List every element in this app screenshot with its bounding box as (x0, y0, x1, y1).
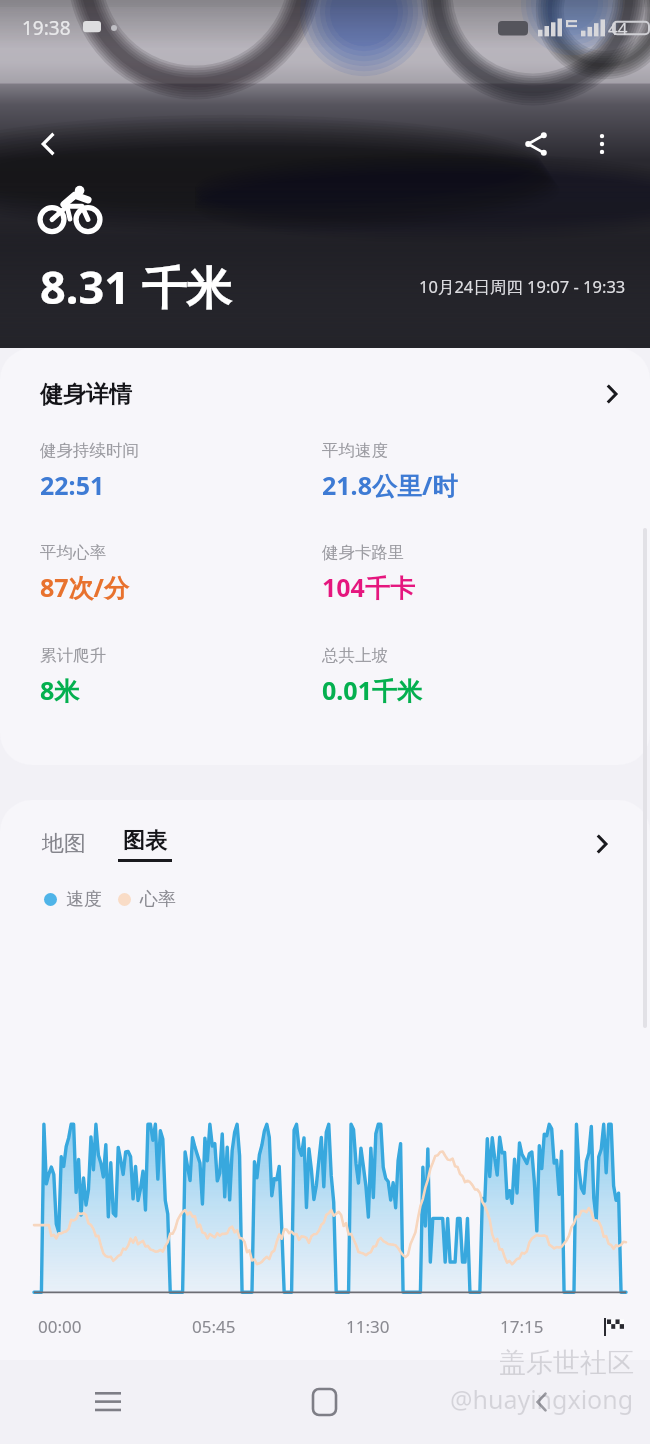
button[interactable]: Home (216, 1360, 433, 1444)
staticText: 累计爬升 (40, 645, 106, 666)
staticText: 心率 (140, 888, 176, 911)
staticText: 05:45 (192, 1315, 236, 1338)
staticText: 健身详情 (40, 380, 132, 409)
staticText: 平均心率 (40, 542, 106, 563)
staticText: 盖乐世社区 (499, 1346, 634, 1380)
staticText: 0.01千米 (322, 673, 422, 707)
staticText: 8米 (40, 673, 80, 707)
staticText: 104千卡 (322, 570, 415, 604)
staticText: 平均速度 (322, 440, 388, 461)
staticText: 19:38 (22, 15, 71, 41)
staticText: 11:30 (346, 1315, 390, 1338)
button[interactable]: 图表 (114, 821, 176, 868)
staticText: 地图 (42, 830, 86, 858)
staticText: 图表 (123, 827, 167, 855)
staticText: 8.31 千米 (40, 256, 232, 317)
staticText: 健身卡路里 (322, 542, 405, 563)
button[interactable]: Share (508, 116, 564, 172)
button[interactable]: Back (433, 1360, 650, 1444)
button[interactable]: Open chart details (582, 824, 622, 864)
button[interactable]: Back (20, 116, 76, 172)
staticText: 10月24日周四 19:07 - 19:33 (419, 275, 626, 298)
button[interactable]: More options (574, 116, 630, 172)
button[interactable]: 健身详情 (0, 348, 650, 440)
staticText: @huayingxiong (450, 1382, 634, 1416)
staticText: 速度 (66, 888, 102, 911)
staticText: 17:15 (500, 1315, 544, 1338)
staticText: 22:51 (40, 468, 105, 502)
staticText: 44 (608, 17, 628, 40)
staticText: 87次/分 (40, 570, 129, 604)
button[interactable]: 地图 (38, 824, 90, 864)
staticText: 00:00 (38, 1315, 82, 1338)
staticText: 健身持续时间 (40, 440, 139, 461)
staticText: 21.8公里/时 (322, 468, 458, 502)
staticText: 总共上坡 (322, 645, 388, 666)
button[interactable]: Recent apps (0, 1360, 216, 1444)
